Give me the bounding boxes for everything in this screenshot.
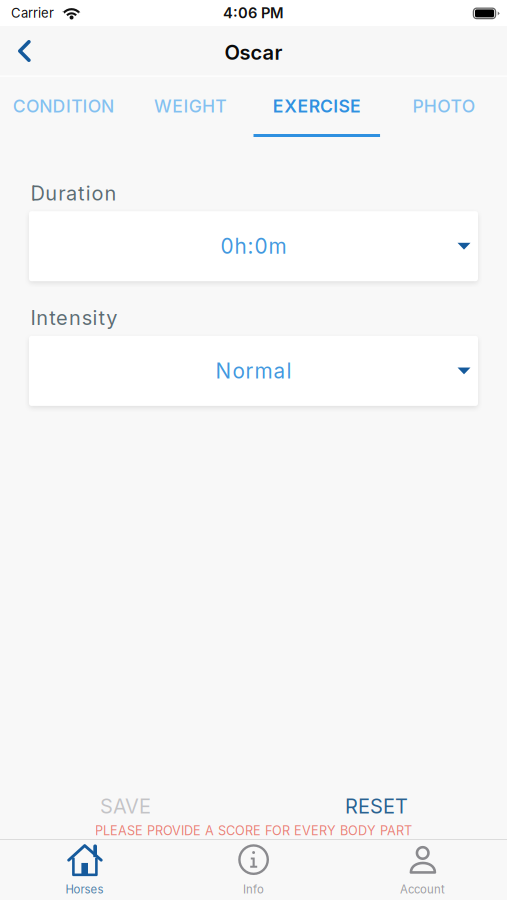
button[interactable]: RESET	[251, 794, 502, 818]
button[interactable]: PHOTO	[380, 77, 507, 138]
button[interactable]: Normal	[29, 336, 478, 406]
staticText: Intensity	[30, 306, 117, 330]
button[interactable]: Back	[0, 26, 44, 77]
button[interactable]: SAVE	[0, 794, 251, 818]
staticText: RESET	[345, 794, 408, 818]
staticText: PLEASE PROVIDE A SCORE FOR EVERY BODY PA…	[95, 823, 412, 838]
button[interactable]: WEIGHT	[127, 77, 254, 138]
staticText: Info	[243, 883, 264, 896]
staticText: 0h:0m	[220, 234, 286, 259]
staticText: PHOTO	[412, 95, 475, 117]
staticText: Carrier	[11, 5, 54, 21]
staticText: EXERCISE	[273, 95, 361, 117]
staticText: CONDITION	[13, 95, 114, 117]
staticText: Duration	[30, 181, 116, 205]
staticText: SAVE	[100, 794, 151, 818]
staticText: WEIGHT	[154, 95, 226, 117]
button[interactable]: CONDITION	[0, 77, 127, 138]
button[interactable]: 0h:0m	[29, 211, 478, 281]
staticText: Normal	[215, 358, 291, 383]
button[interactable]: EXERCISE	[253, 77, 380, 138]
button[interactable]: Horses	[0, 839, 169, 900]
button[interactable]: Account	[338, 839, 507, 900]
staticText: 4:06 PM	[223, 4, 284, 22]
staticText: Oscar	[224, 40, 282, 65]
staticText: Horses	[65, 883, 103, 896]
staticText: Account	[400, 883, 445, 896]
button[interactable]: Info	[169, 839, 338, 900]
